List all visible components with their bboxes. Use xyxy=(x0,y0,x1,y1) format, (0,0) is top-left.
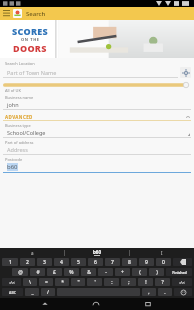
button[interactable]: Finished xyxy=(166,268,192,276)
button[interactable]: a xyxy=(0,248,64,257)
staticText: + xyxy=(121,269,124,276)
button[interactable]: ADVANCED xyxy=(3,114,191,120)
staticText: £ xyxy=(53,269,56,276)
button[interactable]: Emoji xyxy=(174,288,192,296)
staticText: All of UK xyxy=(5,88,21,93)
staticText: " xyxy=(77,279,80,286)
staticText: ; xyxy=(128,279,130,286)
button[interactable]: % xyxy=(64,268,79,276)
staticText: @ xyxy=(18,269,23,276)
staticText: * xyxy=(61,279,64,286)
staticText: ON THE xyxy=(21,37,40,42)
button[interactable]: b60 xyxy=(65,248,129,257)
button[interactable]: @ xyxy=(12,268,28,276)
staticText: b60 xyxy=(7,163,18,171)
staticText: # xyxy=(36,269,40,276)
other: Collapse xyxy=(185,114,191,120)
staticText: Postcode xyxy=(5,157,23,162)
button[interactable]: I xyxy=(130,248,194,257)
staticText: =\< xyxy=(9,280,15,285)
button[interactable]: 8 xyxy=(122,258,137,266)
staticText: Part of Town Name xyxy=(7,69,57,76)
button[interactable] xyxy=(3,82,191,88)
staticText: a xyxy=(31,250,34,256)
staticText: & xyxy=(87,269,91,276)
staticText: / xyxy=(47,289,49,296)
button[interactable]: Home xyxy=(90,298,102,310)
staticText: b60 xyxy=(93,249,101,255)
button[interactable]: _ xyxy=(25,288,39,296)
button[interactable]: = xyxy=(39,278,53,286)
button[interactable]: b60 xyxy=(3,163,191,173)
staticText: = xyxy=(45,279,48,286)
staticText: ' xyxy=(94,279,96,286)
button[interactable]: ( xyxy=(132,268,147,276)
button[interactable]: 2 xyxy=(20,258,35,266)
staticText: 8 xyxy=(128,259,131,266)
staticText: ( xyxy=(139,269,141,276)
staticText: 7 xyxy=(111,259,114,266)
staticText: SCORES xyxy=(12,25,49,37)
staticText: 1 xyxy=(9,259,12,266)
button[interactable]: john xyxy=(3,101,191,110)
button[interactable]: ABC xyxy=(2,288,23,296)
button[interactable]: ! xyxy=(138,278,153,286)
button[interactable]: Back xyxy=(39,298,51,310)
staticText: - xyxy=(105,269,107,276)
button[interactable]: \ xyxy=(23,278,37,286)
button[interactable]: # xyxy=(30,268,45,276)
button[interactable]: =\< xyxy=(172,278,192,286)
button[interactable]: =\< xyxy=(2,278,21,286)
staticText: 5 xyxy=(77,259,80,266)
button[interactable]: School/College xyxy=(3,129,191,138)
button[interactable]: Address xyxy=(3,146,191,155)
button[interactable]: 1 xyxy=(2,258,18,266)
staticText: 4 xyxy=(60,259,63,266)
staticText: 9 xyxy=(145,259,148,266)
staticText: Search Location xyxy=(5,61,35,66)
staticText: , xyxy=(148,289,150,296)
button[interactable]: , xyxy=(142,288,156,296)
staticText: Business type xyxy=(5,123,31,128)
button[interactable]: " xyxy=(71,278,85,286)
button[interactable]: 6 xyxy=(88,258,103,266)
staticText: Part of address xyxy=(5,140,34,145)
button[interactable]: + xyxy=(115,268,130,276)
staticText: % xyxy=(69,269,74,276)
staticText: ABC xyxy=(9,290,16,295)
button[interactable]: ) xyxy=(149,268,164,276)
staticText: 6 xyxy=(94,259,97,266)
button[interactable]: - xyxy=(98,268,113,276)
staticText: 2 xyxy=(26,259,29,266)
staticText: Address xyxy=(7,146,28,153)
button[interactable]: / xyxy=(41,288,55,296)
button[interactable]: * xyxy=(55,278,69,286)
staticText: _ xyxy=(31,289,34,296)
staticText: 3 xyxy=(43,259,46,266)
button[interactable]: £ xyxy=(47,268,62,276)
staticText: DOORS xyxy=(13,42,47,54)
button[interactable]: Backspace xyxy=(173,258,192,266)
button[interactable]: ? xyxy=(155,278,170,286)
staticText: 0 xyxy=(162,259,165,266)
button[interactable]: : xyxy=(104,278,119,286)
button[interactable]: & xyxy=(81,268,96,276)
button[interactable]: 3 xyxy=(37,258,52,266)
button[interactable]: Recents xyxy=(142,298,154,310)
button[interactable]: Part of Town Name xyxy=(3,69,178,78)
button[interactable]: 4 xyxy=(54,258,69,266)
button[interactable]: 5 xyxy=(71,258,86,266)
staticText: \ xyxy=(29,279,31,286)
button[interactable]: 0 xyxy=(156,258,171,266)
button[interactable]: Menu xyxy=(0,7,13,20)
button[interactable]: ; xyxy=(121,278,136,286)
staticText: =\< xyxy=(179,280,185,285)
staticText: : xyxy=(111,279,113,286)
button[interactable]: . xyxy=(158,288,172,296)
button[interactable]: ' xyxy=(87,278,102,286)
button[interactable]: 7 xyxy=(105,258,120,266)
button[interactable]: 9 xyxy=(139,258,154,266)
button[interactable]: Use my location xyxy=(180,67,191,78)
